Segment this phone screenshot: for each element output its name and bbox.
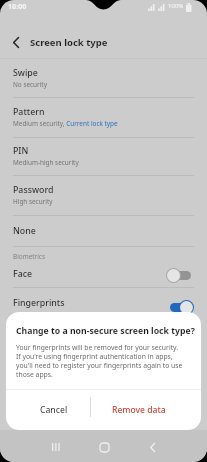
staticText: 100% xyxy=(168,2,184,10)
button[interactable] xyxy=(2,28,28,56)
button[interactable] xyxy=(166,268,195,283)
staticText: Change to a non-secure screen lock type? xyxy=(16,325,195,337)
staticText: Biometrics xyxy=(13,252,45,261)
staticText: High security xyxy=(13,197,53,206)
staticText: Screen lock type xyxy=(30,36,108,49)
staticText: Remove data xyxy=(112,404,166,416)
staticText: Pattern xyxy=(13,106,45,118)
staticText: Cancel xyxy=(40,404,68,416)
staticText: Your fingerprints will be removed for yo… xyxy=(16,343,183,379)
staticText: 10:00 xyxy=(8,1,27,11)
button[interactable] xyxy=(138,436,166,458)
staticText: PIN xyxy=(13,145,29,157)
button[interactable]: Remove data xyxy=(91,390,187,430)
button[interactable]: Pattern xyxy=(0,97,207,137)
button[interactable]: Fingerprints xyxy=(0,290,207,316)
button[interactable]: Cancel xyxy=(16,390,92,430)
button[interactable]: Swipe xyxy=(0,58,207,97)
button[interactable] xyxy=(90,436,118,458)
staticText: No security xyxy=(13,80,47,89)
staticText: Fingerprints xyxy=(13,297,65,309)
staticText: Face xyxy=(13,268,33,280)
button[interactable]: Password xyxy=(0,175,207,215)
button[interactable] xyxy=(166,300,195,315)
staticText: Medium-high security xyxy=(13,158,79,167)
button[interactable]: Face xyxy=(0,260,207,287)
staticText: Medium security, Current lock type xyxy=(13,119,118,128)
button[interactable]: None xyxy=(0,215,207,246)
staticText: Swipe xyxy=(13,67,38,79)
button[interactable]: PIN xyxy=(0,137,207,175)
staticText: None xyxy=(13,225,36,237)
button[interactable] xyxy=(42,436,70,458)
staticText: Password xyxy=(13,184,54,196)
